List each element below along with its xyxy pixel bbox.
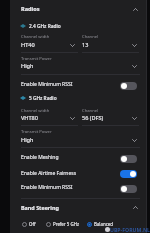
button[interactable] — [21, 106, 78, 126]
button[interactable] — [82, 33, 139, 53]
staticText: High — [21, 136, 34, 144]
button[interactable]: Off — [22, 219, 36, 229]
button[interactable]: Balanced — [87, 219, 113, 229]
staticText: 2.4 GHz Radio — [29, 23, 61, 30]
staticText: 5 GHz Radio — [29, 95, 57, 102]
staticText: Transmit Power — [21, 56, 52, 62]
button[interactable]: Prefer 5 GHz — [46, 219, 79, 229]
button[interactable] — [21, 181, 140, 195]
button[interactable] — [21, 2, 140, 16]
button[interactable] — [21, 54, 140, 75]
staticText: Channel — [82, 108, 99, 114]
staticText: UBP-FORUM.NL — [110, 226, 150, 233]
button[interactable] — [21, 127, 140, 148]
staticText: Enable Airtime Fairness — [21, 170, 77, 177]
button[interactable] — [21, 33, 78, 53]
staticText: Balanced — [94, 221, 113, 227]
staticText: High — [21, 62, 34, 70]
button[interactable]: Collapse Band Steering — [133, 206, 138, 209]
button[interactable]: Collapse Radios — [133, 8, 138, 11]
button[interactable] — [21, 151, 140, 165]
staticText: VHT80 — [21, 114, 39, 122]
staticText: Prefer 5 GHz — [53, 221, 79, 227]
staticText: Radios — [21, 5, 40, 13]
button[interactable]: Enable Minimum RSSI — [120, 82, 137, 90]
button[interactable]: Enable Airtime Fairness — [120, 170, 137, 178]
staticText: Channel — [82, 34, 99, 40]
staticText: Enable Minimum RSSI — [21, 184, 73, 191]
staticText: Enable Minimum RSSI — [21, 81, 73, 88]
staticText: Enable Meshing — [21, 154, 59, 161]
staticText: Off — [29, 221, 36, 227]
staticText: HT40 — [21, 41, 35, 49]
staticText: Channel width — [21, 108, 50, 114]
button[interactable]: Enable Minimum RSSI — [120, 185, 137, 193]
button[interactable]: Enable Meshing — [120, 155, 137, 163]
button[interactable] — [21, 78, 140, 92]
staticText: Transmit Power — [21, 129, 52, 135]
staticText: 13 — [82, 41, 89, 49]
button[interactable] — [21, 167, 140, 181]
staticText: Band Steering — [21, 204, 59, 211]
staticText: 56 (DFS) — [82, 114, 104, 122]
staticText: Channel width — [21, 34, 50, 40]
button[interactable] — [21, 201, 140, 214]
button[interactable] — [82, 106, 139, 126]
